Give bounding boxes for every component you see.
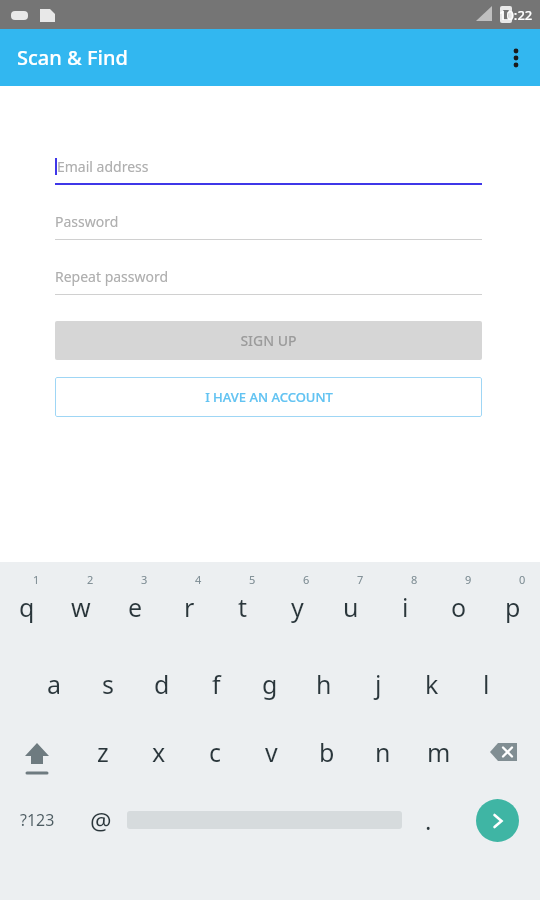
staticText: 3 [141, 572, 148, 587]
button[interactable]: 4 [162, 572, 216, 644]
button[interactable]: n [355, 724, 411, 780]
staticText: w [71, 590, 91, 624]
staticText: d [154, 667, 170, 701]
staticText: . [425, 804, 432, 837]
button[interactable]: Backspace [467, 724, 540, 780]
staticText: k [425, 667, 439, 701]
button[interactable]: s [81, 656, 135, 712]
staticText: v [265, 735, 278, 769]
staticText: 5 [249, 572, 256, 587]
staticText: t [238, 590, 248, 624]
staticText: y [291, 590, 304, 624]
staticText: a [47, 667, 62, 701]
staticText: Email address [57, 157, 149, 176]
button[interactable]: k [405, 656, 459, 712]
staticText: u [343, 590, 359, 624]
button[interactable]: 1 [0, 572, 54, 644]
staticText: n [375, 735, 391, 769]
button[interactable]: Shift [0, 724, 74, 780]
staticText: f [212, 667, 221, 701]
button[interactable]: 6 [270, 572, 324, 644]
staticText: c [209, 735, 222, 769]
staticText: s [102, 667, 114, 701]
button[interactable]: ?123 [0, 790, 74, 850]
staticText: 7 [357, 572, 364, 587]
button[interactable]: c [187, 724, 243, 780]
staticText: g [262, 667, 278, 701]
staticText: b [319, 735, 335, 769]
staticText: i [402, 590, 409, 624]
button[interactable]: SIGN UP [55, 321, 482, 360]
staticText: q [19, 590, 35, 624]
button[interactable]: More options [492, 34, 540, 82]
staticText: SIGN UP [240, 331, 297, 350]
staticText: 10:22 [499, 6, 533, 24]
staticText: Password [55, 212, 119, 231]
button[interactable]: 3 [108, 572, 162, 644]
staticText: Repeat password [55, 267, 169, 286]
button[interactable]: Space [127, 790, 402, 850]
button[interactable]: Repeat password [55, 241, 482, 295]
staticText: p [505, 590, 521, 624]
staticText: 9 [465, 572, 472, 587]
button[interactable]: j [351, 656, 405, 712]
staticText: 6 [303, 572, 310, 587]
staticText: x [152, 735, 166, 769]
button[interactable]: f [189, 656, 243, 712]
button[interactable]: b [299, 724, 355, 780]
button[interactable]: m [411, 724, 467, 780]
button[interactable]: g [243, 656, 297, 712]
staticText: 1 [33, 572, 40, 587]
staticText: 8 [411, 572, 418, 587]
staticText: @ [90, 804, 112, 837]
button[interactable]: . [402, 790, 455, 850]
button[interactable]: 8 [378, 572, 432, 644]
button[interactable]: 9 [432, 572, 486, 644]
button[interactable]: 5 [216, 572, 270, 644]
button[interactable]: 7 [324, 572, 378, 644]
staticText: 4 [195, 572, 202, 587]
button[interactable]: I HAVE AN ACCOUNT [55, 377, 482, 417]
staticText: 0 [519, 572, 526, 587]
button[interactable]: d [135, 656, 189, 712]
staticText: j [375, 667, 382, 701]
button[interactable]: v [243, 724, 299, 780]
button[interactable]: @ [74, 790, 127, 850]
staticText: l [483, 667, 490, 701]
button[interactable]: Password [55, 186, 482, 240]
button[interactable]: l [459, 656, 513, 712]
button[interactable]: h [297, 656, 351, 712]
staticText: z [97, 735, 109, 769]
button[interactable]: x [131, 724, 187, 780]
staticText: Scan & Find [17, 44, 128, 71]
staticText: r [184, 590, 195, 624]
staticText: o [451, 590, 467, 624]
staticText: I HAVE AN ACCOUNT [205, 388, 333, 406]
button[interactable]: 2 [54, 572, 108, 644]
staticText: h [316, 667, 332, 701]
staticText: ?123 [20, 809, 55, 831]
staticText: 2 [87, 572, 94, 587]
button[interactable]: z [74, 724, 131, 780]
staticText: e [128, 590, 143, 624]
button[interactable]: Next [455, 790, 540, 850]
staticText: m [427, 735, 451, 769]
button[interactable]: a [27, 656, 81, 712]
button[interactable]: Email address [55, 131, 482, 185]
button[interactable]: 0 [486, 572, 540, 644]
